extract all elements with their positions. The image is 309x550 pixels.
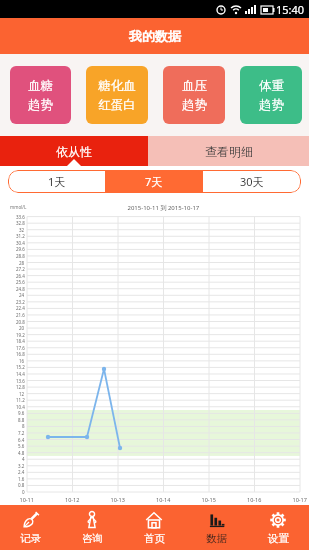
- button[interactable]: 设置: [247, 505, 309, 550]
- button[interactable]: 数据: [185, 505, 247, 550]
- staticText: 咨询: [82, 532, 103, 545]
- button[interactable]: 体重 趋势: [240, 66, 302, 124]
- staticText: 查看明细: [205, 144, 253, 159]
- button[interactable]: 血糖 趋势: [10, 66, 71, 124]
- staticText: 数据: [206, 532, 227, 545]
- staticText: 血压 趋势: [182, 78, 207, 113]
- button[interactable]: 查看明细: [148, 136, 309, 166]
- staticText: 体重 趋势: [259, 78, 284, 113]
- staticText: 我的数据: [129, 28, 181, 44]
- button[interactable]: 血压 趋势: [163, 66, 225, 124]
- staticText: 15:40: [276, 2, 305, 17]
- staticText: 30天: [240, 174, 264, 189]
- button[interactable]: 咨询: [61, 505, 123, 550]
- staticText: 糖化血 红蛋白: [98, 78, 136, 113]
- staticText: 首页: [144, 532, 165, 545]
- staticText: 依从性: [56, 144, 92, 159]
- button[interactable]: 糖化血 红蛋白: [86, 66, 148, 124]
- staticText: 血糖 趋势: [28, 78, 53, 113]
- button[interactable]: 7天: [105, 170, 203, 193]
- button[interactable]: 1天: [8, 170, 105, 193]
- button[interactable]: 记录: [0, 505, 61, 550]
- button[interactable]: 依从性: [0, 136, 148, 166]
- staticText: 1天: [48, 174, 66, 189]
- button[interactable]: 30天: [203, 170, 301, 193]
- button[interactable]: 首页: [123, 505, 185, 550]
- staticText: 设置: [268, 532, 289, 545]
- staticText: 记录: [20, 532, 41, 545]
- staticText: 7天: [145, 174, 163, 189]
